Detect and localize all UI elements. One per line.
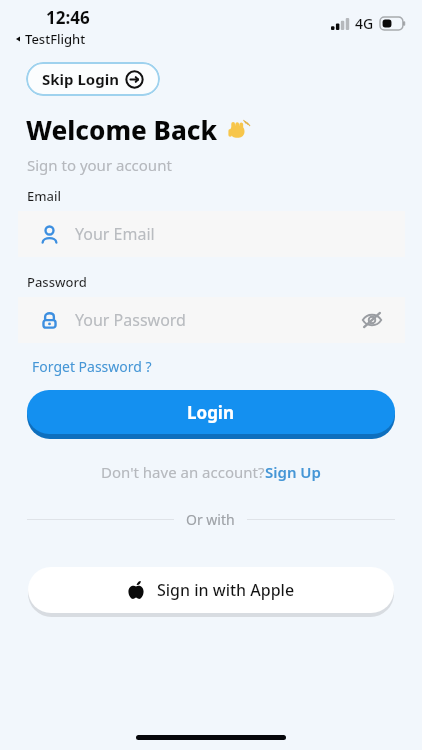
button[interactable]: Your Password [18,297,405,343]
staticText: Email [27,187,62,205]
staticText: Sign to your account [27,155,172,175]
staticText: Skip Login [42,69,119,89]
staticText: Don't have an account? [101,462,265,482]
staticText: Your Password [75,309,186,331]
staticText: Sign in with Apple [157,579,295,601]
staticText: 12:46 [46,6,90,29]
button[interactable]: Login [27,390,395,434]
button[interactable]: Your Email [18,211,405,257]
staticText: Password [27,273,87,291]
staticText: Your Email [75,223,155,245]
staticText: Sign Up [265,462,321,482]
button[interactable]: Skip Login [26,62,160,96]
staticText: Login [187,401,235,424]
button[interactable]: Sign Up [265,462,321,482]
staticText: Welcome Back [26,112,218,147]
button[interactable]: Show password [357,305,387,335]
staticText: Or with [186,510,235,529]
staticText: Forget Password ? [32,357,152,376]
staticText: 4G [355,14,374,33]
button[interactable]: Sign in with Apple [28,567,394,613]
staticText: TestFlight [25,30,86,48]
button[interactable]: Forget Password ? [32,357,152,376]
